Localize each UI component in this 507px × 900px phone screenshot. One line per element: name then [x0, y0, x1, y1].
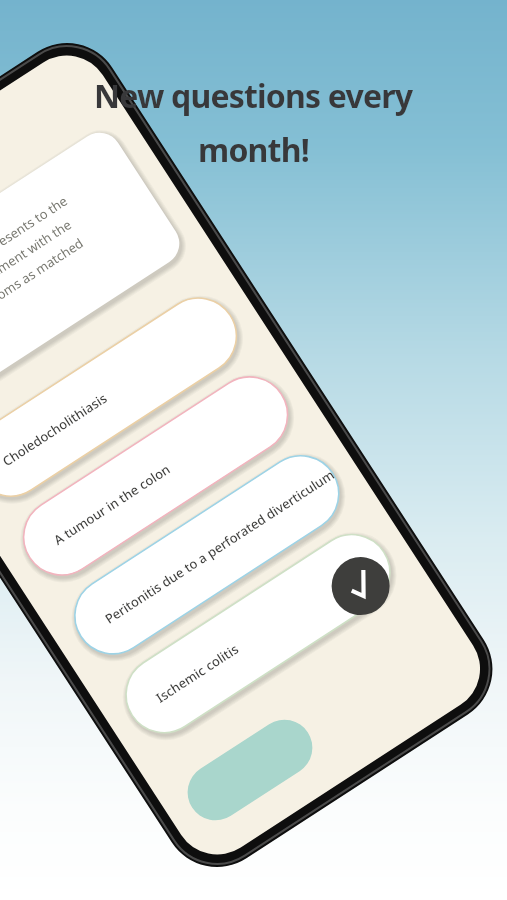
button[interactable]: Quiz screen preview — [0, 0, 507, 900]
